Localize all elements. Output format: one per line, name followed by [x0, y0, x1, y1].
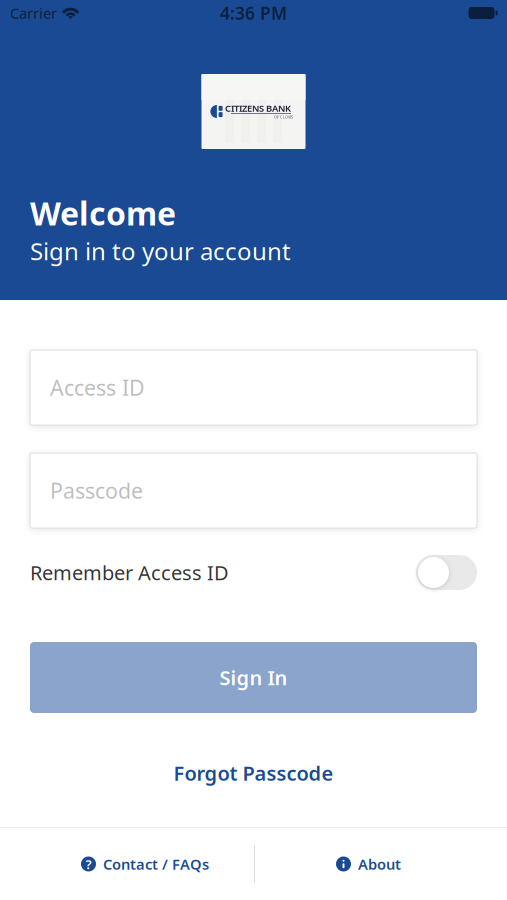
button[interactable]: About — [255, 828, 507, 900]
staticText: Forgot Passcode — [173, 760, 333, 786]
staticText: CITIZENS BANK — [225, 102, 291, 114]
staticText: Contact / FAQs — [103, 854, 209, 874]
button[interactable]: Access ID — [30, 350, 477, 425]
button[interactable]: Sign In — [30, 642, 477, 713]
staticText: Sign In — [219, 664, 287, 691]
button[interactable]: Forgot Passcode — [30, 755, 477, 791]
staticText: OF CLOVIS — [274, 114, 293, 119]
staticText: Carrier — [10, 3, 57, 23]
staticText: Access ID — [50, 373, 145, 402]
staticText: About — [358, 854, 401, 874]
staticText: Welcome — [30, 192, 176, 234]
staticText: Remember Access ID — [30, 559, 229, 586]
button[interactable]: ? — [0, 828, 254, 900]
staticText: 4:36 PM — [220, 1, 287, 24]
staticText: ? — [85, 855, 91, 873]
staticText: Sign in to your account — [30, 235, 291, 267]
button[interactable]: Passcode — [30, 453, 477, 528]
button[interactable]: Remember Access ID — [416, 555, 477, 590]
staticText: Passcode — [50, 476, 143, 505]
